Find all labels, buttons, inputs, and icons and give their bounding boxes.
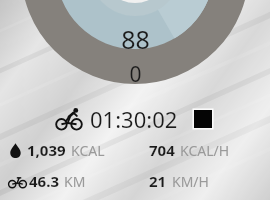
staticText: KCAL: [71, 141, 105, 160]
staticText: KM/H: [172, 172, 209, 191]
staticText: KCAL/H: [180, 141, 230, 160]
staticText: 88: [121, 22, 150, 56]
staticText: KM: [64, 172, 86, 191]
staticText: 0: [129, 60, 142, 89]
staticText: 704: [149, 140, 175, 160]
staticText: 46.3: [29, 171, 59, 191]
button[interactable]: 21: [149, 170, 270, 192]
button[interactable]: 1,039: [9, 139, 149, 161]
staticText: 21: [149, 171, 167, 191]
button[interactable]: 46.3: [9, 170, 149, 192]
button[interactable]: Cycling activity: [56, 108, 82, 130]
staticText: 01:30:02: [90, 104, 178, 134]
button[interactable]: Stop workout: [192, 108, 214, 130]
staticText: 1,039: [27, 140, 66, 160]
button[interactable]: 704: [149, 139, 270, 161]
